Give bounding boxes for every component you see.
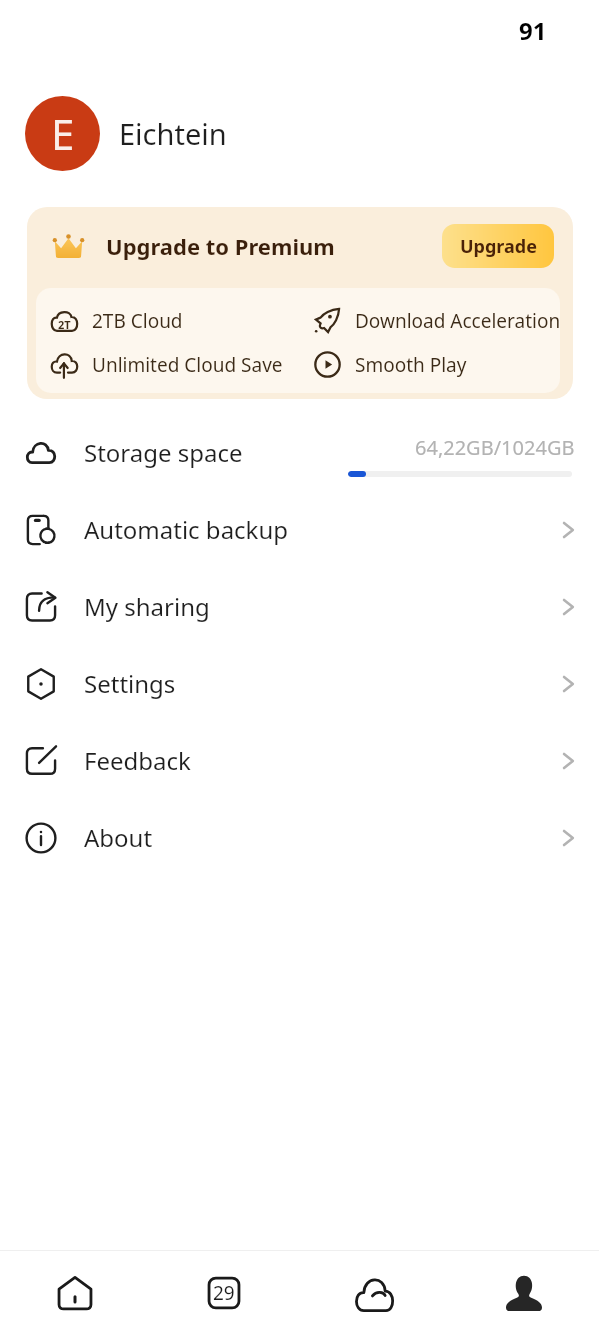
staticText: Automatic backup	[84, 513, 289, 546]
button[interactable]: Home	[0, 1251, 149, 1335]
button[interactable]: About	[0, 799, 599, 876]
staticText: 64,22GB/1024GB	[415, 434, 575, 461]
button[interactable]: Storage space	[0, 414, 599, 491]
staticText: Settings	[84, 667, 176, 700]
button[interactable]: My sharing	[0, 568, 599, 645]
staticText: Eichtein	[119, 114, 227, 153]
staticText: Download Acceleration	[355, 308, 560, 334]
button[interactable]: Profile	[449, 1251, 599, 1335]
button[interactable]: Upgrade to Premium	[27, 207, 573, 399]
staticText: Smooth Play	[355, 352, 467, 378]
staticText: Upgrade to Premium	[106, 231, 335, 261]
button[interactable]: Calendar	[149, 1251, 299, 1335]
staticText: 2TB Cloud	[92, 308, 183, 334]
button[interactable]: Settings	[0, 645, 599, 722]
button[interactable]: Feedback	[0, 722, 599, 799]
staticText: Unlimited Cloud Save	[92, 352, 283, 378]
staticText: 2T	[58, 317, 71, 332]
staticText: My sharing	[84, 590, 210, 623]
staticText: Storage space	[84, 436, 243, 469]
staticText: 29	[213, 1280, 235, 1306]
staticText: Feedback	[84, 744, 191, 777]
staticText: 91	[519, 14, 547, 47]
staticText: Upgrade	[460, 234, 537, 259]
button[interactable]: Cloud	[299, 1251, 449, 1335]
staticText: E	[51, 105, 75, 162]
staticText: About	[84, 821, 153, 854]
button[interactable]: Automatic backup	[0, 491, 599, 568]
button[interactable]: Upgrade	[442, 224, 554, 268]
